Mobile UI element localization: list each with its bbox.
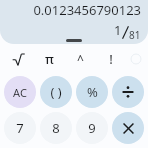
staticText: 8 [52,119,60,137]
button[interactable]: More functions [129,52,143,66]
button[interactable]: % [76,76,108,108]
button[interactable]: ! [97,45,125,73]
button[interactable]: Square root [4,45,32,73]
button[interactable]: π [35,45,63,73]
staticText: 0.0123456790123 [6,1,141,19]
staticText: 9 [88,119,96,137]
staticText: % [87,83,98,101]
staticText: 1 [114,21,122,39]
button[interactable]: Multiply [112,112,144,144]
button[interactable]: AC [4,76,36,108]
button[interactable]: ( ) [40,76,72,108]
button[interactable]: Divide [112,76,144,108]
staticText: ( ) [50,83,62,101]
button[interactable]: ^ [66,45,94,73]
button[interactable]: 8 [40,112,72,144]
staticText: π [45,50,54,68]
staticText: 81 [129,28,141,42]
button[interactable]: 9 [76,112,108,144]
staticText: AC [13,85,27,100]
staticText: ^ [77,51,84,67]
button[interactable]: 7 [4,112,36,144]
button[interactable]: 0.0123456790123 [0,0,148,44]
staticText: ! [109,50,113,68]
staticText: 7 [16,119,24,137]
